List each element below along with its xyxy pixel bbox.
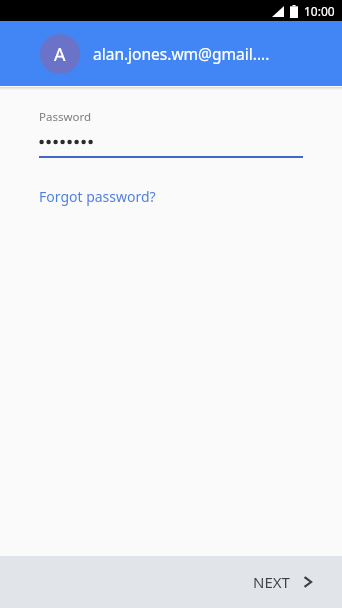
staticText: alan.jones.wm@gmail....: [93, 43, 270, 64]
button[interactable]: A: [0, 21, 342, 86]
button[interactable]: Password: [0, 109, 342, 158]
staticText: Password: [39, 109, 92, 125]
staticText: Forgot password?: [39, 187, 156, 206]
button[interactable]: Forgot password?: [39, 185, 156, 208]
button[interactable]: NEXT: [243, 564, 324, 600]
staticText: NEXT: [253, 572, 290, 592]
staticText: A: [54, 42, 66, 67]
staticText: 10:00: [304, 3, 335, 19]
other: Next: [302, 576, 314, 588]
